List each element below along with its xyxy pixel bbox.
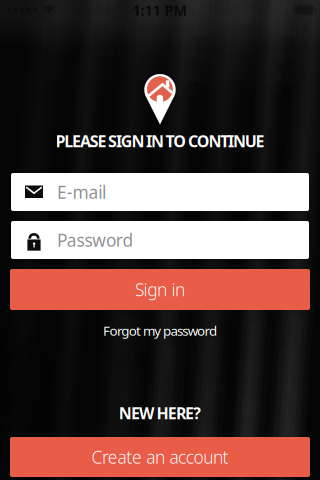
staticText: NEW HERE?: [119, 402, 201, 424]
button[interactable]: Password: [11, 221, 309, 259]
button[interactable]: Create an account: [10, 437, 310, 477]
staticText: Forgot my password: [103, 322, 217, 339]
button[interactable]: E-mail: [11, 173, 309, 211]
staticText: 1:11 PM: [132, 0, 187, 20]
staticText: Create an account: [91, 445, 229, 468]
staticText: PLEASE SIGN IN TO CONTINUE: [55, 130, 264, 152]
staticText: Sign in: [135, 278, 185, 301]
button[interactable]: Forgot my password: [103, 322, 217, 339]
button[interactable]: Sign in: [10, 269, 310, 310]
staticText: E-mail: [57, 180, 106, 203]
staticText: Password: [57, 228, 134, 251]
